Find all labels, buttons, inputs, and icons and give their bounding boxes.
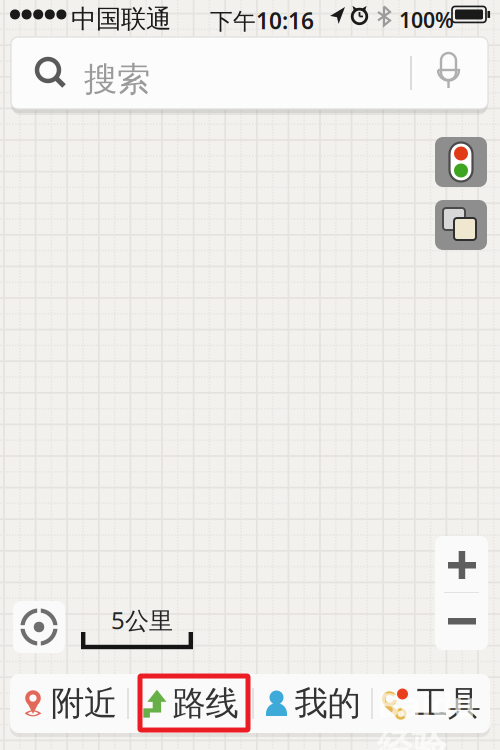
button[interactable]: 搜索 — [11, 37, 488, 109]
button[interactable]: 定位 — [13, 601, 65, 653]
staticText: 我的 — [294, 683, 360, 724]
staticText: 搜索 — [84, 59, 150, 100]
staticText: Baidu经验 — [377, 681, 476, 750]
staticText: 100% — [399, 5, 454, 34]
staticText: 中国联通 — [71, 3, 171, 34]
staticText: 下午10:16 — [210, 5, 314, 35]
button[interactable]: 工具 — [372, 674, 490, 733]
staticText: 路线 — [172, 683, 238, 724]
staticText: 5公里 — [111, 604, 173, 636]
button[interactable]: 附近 — [10, 674, 128, 733]
button[interactable]: 路况 — [435, 137, 487, 187]
staticText: 附近 — [51, 683, 117, 724]
button[interactable]: 路线 — [128, 674, 253, 733]
button[interactable]: 图层 — [435, 200, 487, 250]
staticText: 工具 — [414, 683, 480, 724]
button[interactable]: 缩小 — [435, 593, 488, 650]
button[interactable]: 放大 — [435, 536, 488, 592]
button[interactable]: 我的 — [253, 674, 372, 733]
